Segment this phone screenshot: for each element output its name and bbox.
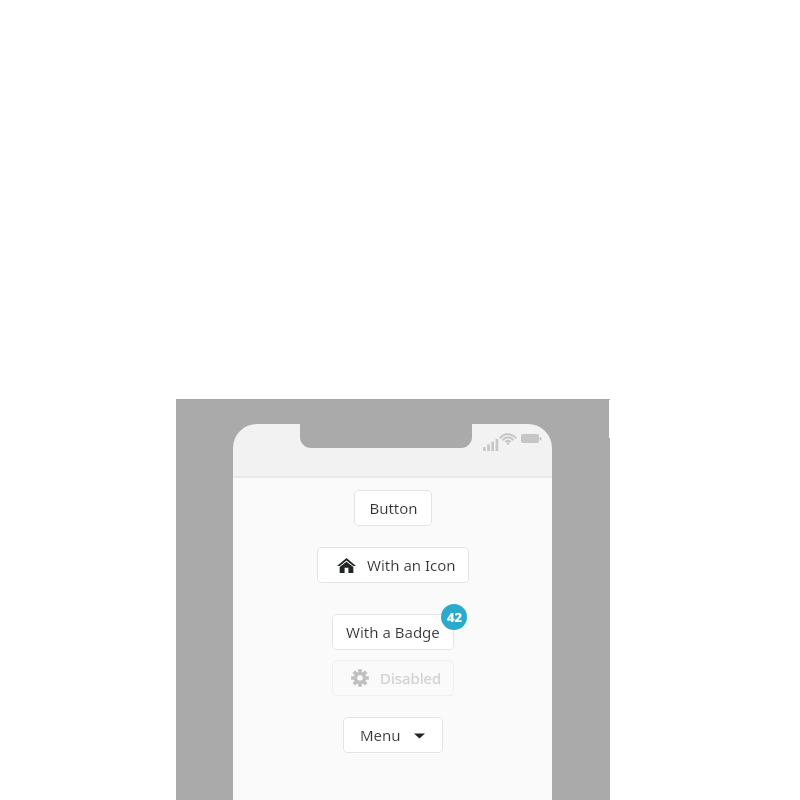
button[interactable]: Button [354, 490, 432, 526]
staticText: Disabled [380, 668, 442, 688]
button[interactable]: With a Badge [332, 614, 454, 650]
staticText: 42 [447, 608, 462, 626]
other: 42 notifications [441, 604, 467, 630]
staticText: With an Icon [367, 555, 456, 575]
button[interactable]: Menu [343, 717, 443, 753]
staticText: With a Badge [346, 622, 440, 642]
staticText: Button [369, 498, 418, 518]
staticText: Menu [360, 725, 401, 745]
button[interactable]: With an Icon [317, 547, 469, 583]
